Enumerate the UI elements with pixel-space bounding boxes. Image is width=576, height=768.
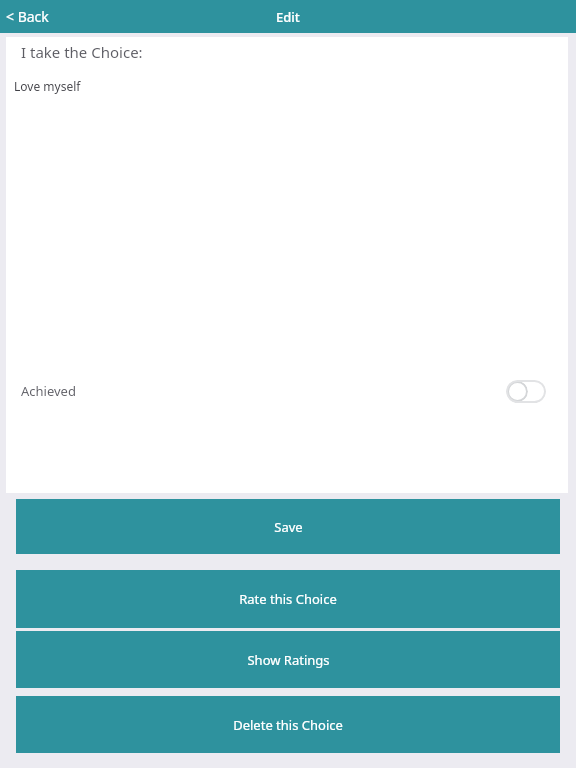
button[interactable]: < Back <box>0 3 59 30</box>
button[interactable]: Achieved toggle, off <box>506 380 546 403</box>
staticText: Delete this Choice <box>233 716 343 734</box>
button[interactable]: Achieved <box>6 368 568 414</box>
staticText: Rate this Choice <box>239 590 337 608</box>
staticText: I take the Choice: <box>21 42 143 62</box>
staticText: Achieved <box>21 382 76 400</box>
button[interactable]: Save <box>16 499 560 554</box>
button[interactable]: Rate this Choice <box>16 570 560 628</box>
staticText: Love myself <box>14 78 81 94</box>
button[interactable]: Show Ratings <box>16 631 560 688</box>
staticText: Save <box>274 518 303 536</box>
staticText: Edit <box>276 8 300 26</box>
staticText: < Back <box>6 7 49 26</box>
button[interactable]: Delete this Choice <box>16 696 560 753</box>
staticText: Show Ratings <box>247 651 330 669</box>
